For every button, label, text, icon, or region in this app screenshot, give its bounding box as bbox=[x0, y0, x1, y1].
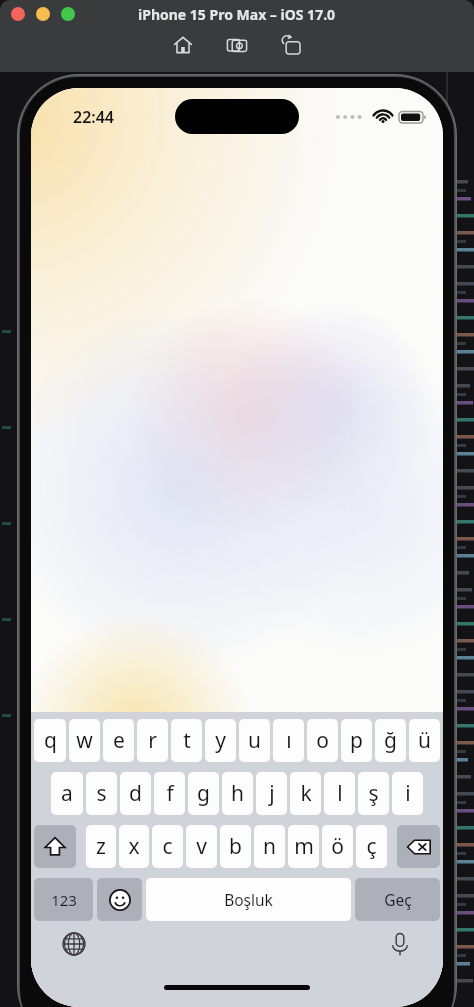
staticText: j bbox=[269, 779, 275, 808]
staticText: ü bbox=[418, 726, 431, 755]
button[interactable]: Close bbox=[11, 7, 25, 21]
staticText: n bbox=[263, 832, 276, 861]
staticText: iPhone 15 Pro Max – iOS 17.0 bbox=[138, 5, 336, 24]
button[interactable]: ş bbox=[358, 772, 389, 815]
button[interactable]: Screenshot bbox=[222, 30, 252, 60]
button[interactable]: t bbox=[171, 719, 202, 762]
staticText: l bbox=[337, 779, 343, 808]
staticText: h bbox=[231, 779, 244, 808]
staticText: s bbox=[96, 779, 107, 808]
button[interactable]: d bbox=[120, 772, 151, 815]
staticText: o bbox=[316, 726, 329, 755]
button[interactable]: i bbox=[392, 772, 423, 815]
staticText: g bbox=[197, 779, 210, 808]
button[interactable]: p bbox=[341, 719, 372, 762]
staticText: p bbox=[350, 726, 363, 755]
staticText: i bbox=[405, 779, 411, 808]
button[interactable]: n bbox=[254, 825, 285, 868]
staticText: x bbox=[128, 832, 140, 861]
button[interactable]: Dictation bbox=[383, 927, 417, 961]
button[interactable]: w bbox=[69, 719, 100, 762]
staticText: w bbox=[76, 726, 93, 755]
button[interactable]: ü bbox=[409, 719, 440, 762]
button[interactable]: h bbox=[222, 772, 253, 815]
button[interactable]: Minimize bbox=[36, 7, 50, 21]
staticText: t bbox=[183, 726, 191, 755]
button[interactable]: b bbox=[220, 825, 251, 868]
button[interactable]: Change keyboard bbox=[57, 927, 91, 961]
button[interactable]: f bbox=[154, 772, 185, 815]
button[interactable]: a bbox=[51, 772, 83, 815]
button[interactable]: Boşluk bbox=[146, 878, 351, 921]
staticText: ı bbox=[286, 726, 292, 755]
staticText: ş bbox=[368, 779, 379, 808]
button[interactable]: c bbox=[152, 825, 183, 868]
button[interactable]: s bbox=[86, 772, 117, 815]
staticText: ğ bbox=[384, 726, 397, 755]
button[interactable]: Backspace bbox=[397, 825, 440, 868]
staticText: e bbox=[113, 726, 125, 755]
button[interactable]: z bbox=[86, 825, 116, 868]
staticText: v bbox=[196, 832, 207, 861]
button[interactable]: Geç bbox=[355, 878, 440, 921]
button[interactable]: y bbox=[205, 719, 236, 762]
button[interactable]: r bbox=[137, 719, 168, 762]
button[interactable]: l bbox=[324, 772, 355, 815]
button[interactable]: ı bbox=[273, 719, 304, 762]
button[interactable]: x bbox=[119, 825, 149, 868]
button[interactable]: Shift bbox=[34, 825, 76, 868]
staticText: y bbox=[215, 726, 226, 755]
staticText: 123 bbox=[51, 890, 77, 910]
button[interactable]: 123 bbox=[34, 878, 93, 921]
button[interactable]: Emoji bbox=[97, 878, 142, 921]
staticText: u bbox=[248, 726, 261, 755]
staticText: c bbox=[162, 832, 173, 861]
staticText: z bbox=[96, 832, 106, 861]
staticText: f bbox=[166, 779, 174, 808]
staticText: a bbox=[61, 779, 73, 808]
button[interactable]: o bbox=[307, 719, 338, 762]
staticText: 22:44 bbox=[73, 106, 115, 128]
button[interactable]: Home bbox=[168, 30, 198, 60]
button[interactable]: ö bbox=[322, 825, 353, 868]
staticText: ç bbox=[366, 832, 377, 861]
button[interactable]: g bbox=[188, 772, 219, 815]
button[interactable]: j bbox=[256, 772, 287, 815]
staticText: r bbox=[148, 726, 157, 755]
button[interactable]: q bbox=[34, 719, 66, 762]
button[interactable]: e bbox=[103, 719, 134, 762]
staticText: ö bbox=[331, 832, 344, 861]
staticText: q bbox=[44, 726, 57, 755]
staticText: m bbox=[294, 832, 314, 861]
button[interactable]: k bbox=[290, 772, 321, 815]
button[interactable]: Rotate bbox=[276, 30, 306, 60]
button[interactable]: m bbox=[288, 825, 319, 868]
button[interactable]: ç bbox=[356, 825, 387, 868]
staticText: k bbox=[300, 779, 312, 808]
button[interactable]: Zoom bbox=[61, 7, 75, 21]
button[interactable]: ğ bbox=[375, 719, 406, 762]
button[interactable]: u bbox=[239, 719, 270, 762]
staticText: Boşluk bbox=[224, 889, 273, 910]
staticText: b bbox=[229, 832, 242, 861]
staticText: Geç bbox=[384, 889, 412, 910]
staticText: d bbox=[129, 779, 142, 808]
button[interactable]: v bbox=[186, 825, 217, 868]
